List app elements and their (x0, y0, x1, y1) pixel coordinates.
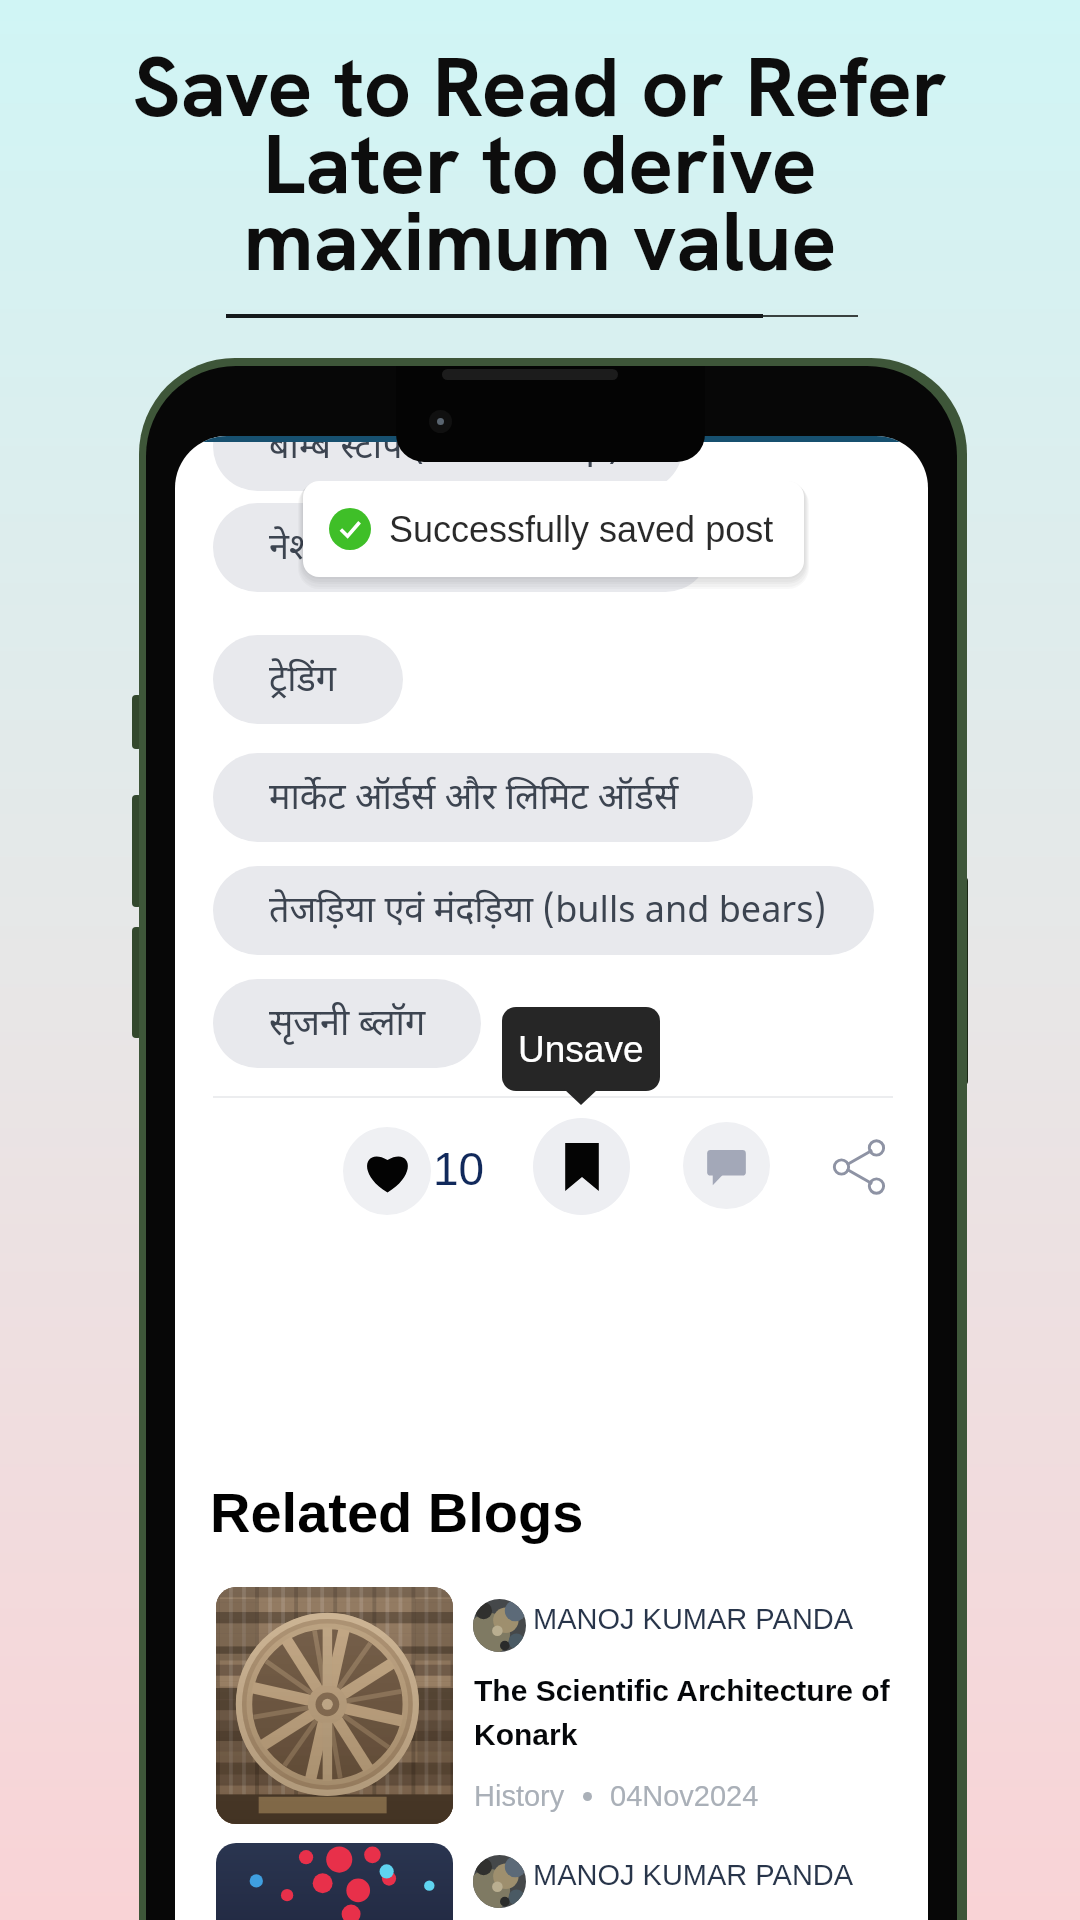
staticText: The Scientific Architecture of Konark (474, 1674, 890, 1752)
staticText: तेजड़िया एवं मंदड़िया (bulls and bears) (269, 890, 827, 937)
button[interactable]: तेजड़िया एवं मंदड़िया (bulls and bears) (213, 866, 874, 955)
button[interactable]: बॉम्ब स्टॉप (bomb stop) (213, 436, 683, 491)
staticText: नेशनल स्टॉक एक्सचेंज (NSE) (269, 527, 661, 574)
staticText: Unsave (518, 1029, 644, 1070)
button[interactable]: Comment (683, 1122, 770, 1209)
staticText: MANOJ KUMAR PANDA (533, 1603, 854, 1635)
button[interactable]: Share (816, 1124, 902, 1210)
staticText: सृजनी ब्लॉग (269, 1003, 426, 1050)
staticText: ट्रेडिंग (269, 659, 336, 706)
staticText: 04Nov2024 (610, 1780, 759, 1812)
staticText: 10 (433, 1143, 485, 1194)
staticText: Save to Read or Refer Later to derive ma… (0, 33, 1080, 295)
staticText: History (474, 1780, 565, 1812)
staticText: MANOJ KUMAR PANDA (533, 1859, 854, 1891)
button[interactable]: सृजनी ब्लॉग (213, 979, 481, 1068)
button[interactable]: मार्केट ऑर्डर्स और लिमिट ऑर्डर्स (213, 753, 753, 842)
staticText: बॉम्ब स्टॉप (bomb stop) (269, 436, 621, 473)
button[interactable]: नेशनल स्टॉक एक्सचेंज (NSE) (213, 503, 710, 592)
staticText: मार्केट ऑर्डर्स और लिमिट ऑर्डर्स (269, 777, 679, 824)
staticText: Related Blogs (210, 1481, 584, 1544)
button[interactable]: Unsave (533, 1118, 630, 1215)
button[interactable]: ट्रेडिंग (213, 635, 403, 724)
button[interactable]: Like (343, 1127, 431, 1215)
staticText: Successfully saved post (389, 509, 774, 549)
